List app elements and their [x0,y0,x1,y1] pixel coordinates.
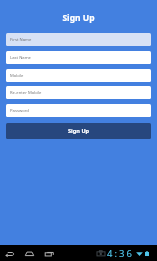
button[interactable]: Battery [145,250,149,257]
button[interactable]: Last Name [6,51,151,64]
staticText: Last Name [10,55,31,61]
button[interactable]: Wi-Fi [136,250,143,257]
button[interactable]: Recent apps [40,245,59,261]
button[interactable]: Home [20,245,39,261]
staticText: Mobile [10,73,24,79]
button[interactable]: First Name [6,33,151,46]
staticText: First Name [10,37,32,43]
staticText: Re-enter Mobile [10,90,42,96]
staticText: 4:36 [107,247,134,260]
staticText: Password [10,108,29,114]
staticText: Sign Up [68,127,90,135]
button[interactable]: Mobile [6,69,151,82]
button[interactable]: Sign Up [6,123,151,139]
button[interactable]: Back [0,245,19,261]
button[interactable]: Re-enter Mobile [6,86,151,99]
button[interactable]: Screenshot [97,250,105,257]
staticText: Sign Up [0,12,157,24]
button[interactable]: Password [6,104,151,117]
